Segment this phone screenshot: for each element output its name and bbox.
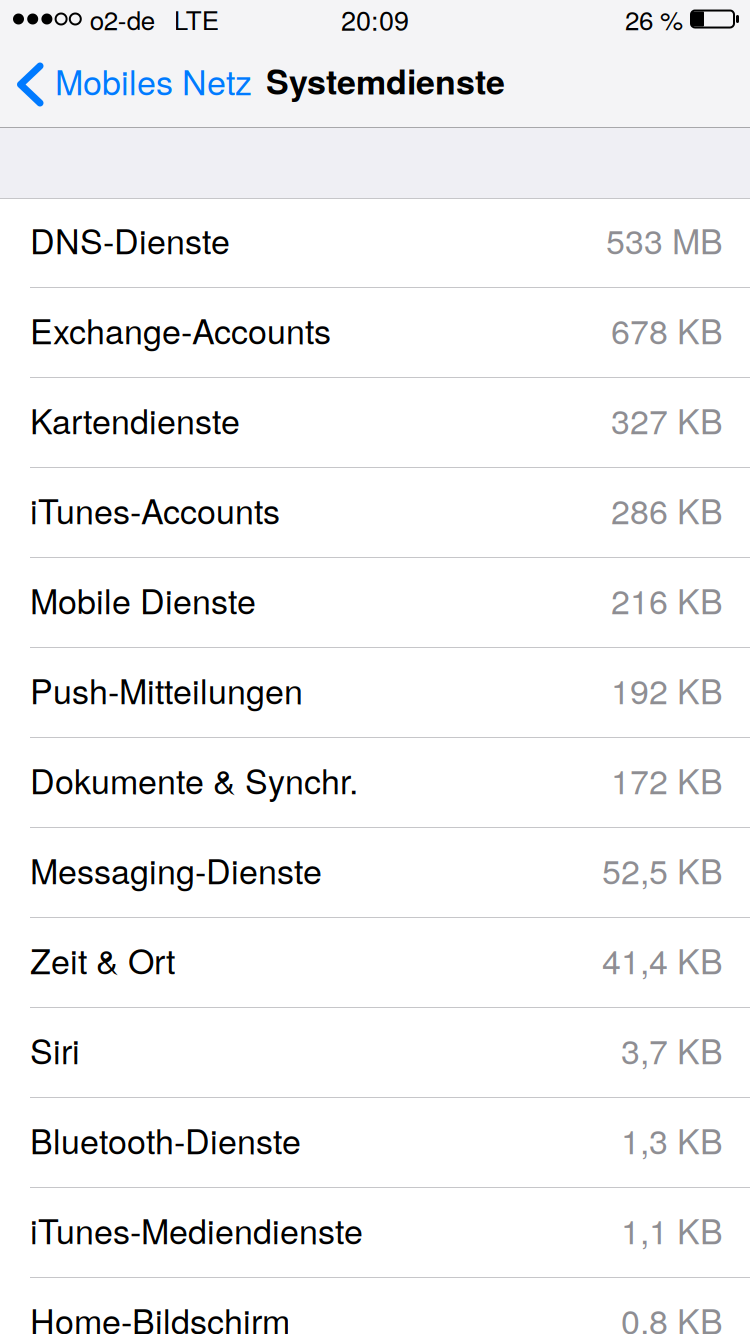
- staticText: Push-Mitteilungen: [30, 665, 303, 714]
- button[interactable]: Exchange-Accounts: [0, 289, 750, 379]
- staticText: LTE: [174, 0, 219, 38]
- staticText: 678 KB: [611, 305, 723, 354]
- button[interactable]: DNS-Dienste: [0, 199, 750, 289]
- staticText: Siri: [30, 1025, 80, 1074]
- staticText: 52,5 KB: [602, 845, 723, 894]
- staticText: Dokumente & Synchr.: [30, 755, 358, 804]
- button[interactable]: iTunes-Accounts: [0, 469, 750, 559]
- button[interactable]: Push-Mitteilungen: [0, 649, 750, 739]
- staticText: iTunes-Accounts: [30, 485, 280, 534]
- staticText: DNS-Dienste: [30, 215, 230, 264]
- button[interactable]: Messaging-Dienste: [0, 829, 750, 919]
- staticText: Mobile Dienste: [30, 575, 256, 624]
- staticText: 286 KB: [611, 485, 723, 534]
- staticText: 192 KB: [611, 665, 723, 714]
- button[interactable]: Mobile Dienste: [0, 559, 750, 649]
- staticText: 0,8 KB: [621, 1295, 723, 1334]
- staticText: Home-Bildschirm: [30, 1295, 290, 1334]
- staticText: Systemdienste: [266, 56, 505, 105]
- staticText: 26 %: [625, 0, 683, 38]
- button[interactable]: Zeit & Ort: [0, 919, 750, 1009]
- button[interactable]: Siri: [0, 1009, 750, 1099]
- button[interactable]: Mobiles Netz: [0, 40, 266, 121]
- staticText: Zeit & Ort: [30, 935, 175, 984]
- staticText: Exchange-Accounts: [30, 305, 331, 354]
- staticText: Messaging-Dienste: [30, 845, 322, 894]
- button[interactable]: Kartendienste: [0, 379, 750, 469]
- staticText: 1,3 KB: [621, 1115, 723, 1164]
- staticText: o2-de: [90, 0, 155, 38]
- staticText: iTunes-Mediendienste: [30, 1205, 363, 1254]
- button[interactable]: Home-Bildschirm: [0, 1279, 750, 1334]
- button[interactable]: Dokumente & Synchr.: [0, 739, 750, 829]
- staticText: Kartendienste: [30, 395, 240, 444]
- staticText: Mobiles Netz: [55, 56, 252, 105]
- button[interactable]: iTunes-Mediendienste: [0, 1189, 750, 1279]
- staticText: 1,1 KB: [621, 1205, 723, 1254]
- staticText: 327 KB: [611, 395, 723, 444]
- staticText: 41,4 KB: [602, 935, 723, 984]
- staticText: 533 MB: [606, 215, 723, 264]
- staticText: 172 KB: [611, 755, 723, 804]
- staticText: 216 KB: [611, 575, 723, 624]
- staticText: Bluetooth-Dienste: [30, 1115, 301, 1164]
- button[interactable]: Bluetooth-Dienste: [0, 1099, 750, 1189]
- staticText: 20:09: [341, 0, 409, 38]
- staticText: 3,7 KB: [621, 1025, 723, 1074]
